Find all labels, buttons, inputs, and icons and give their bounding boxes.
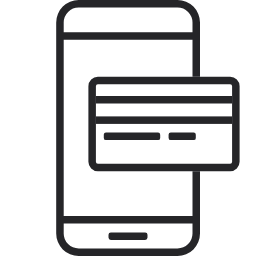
button[interactable]: Pay with card on your phone [0,0,256,256]
